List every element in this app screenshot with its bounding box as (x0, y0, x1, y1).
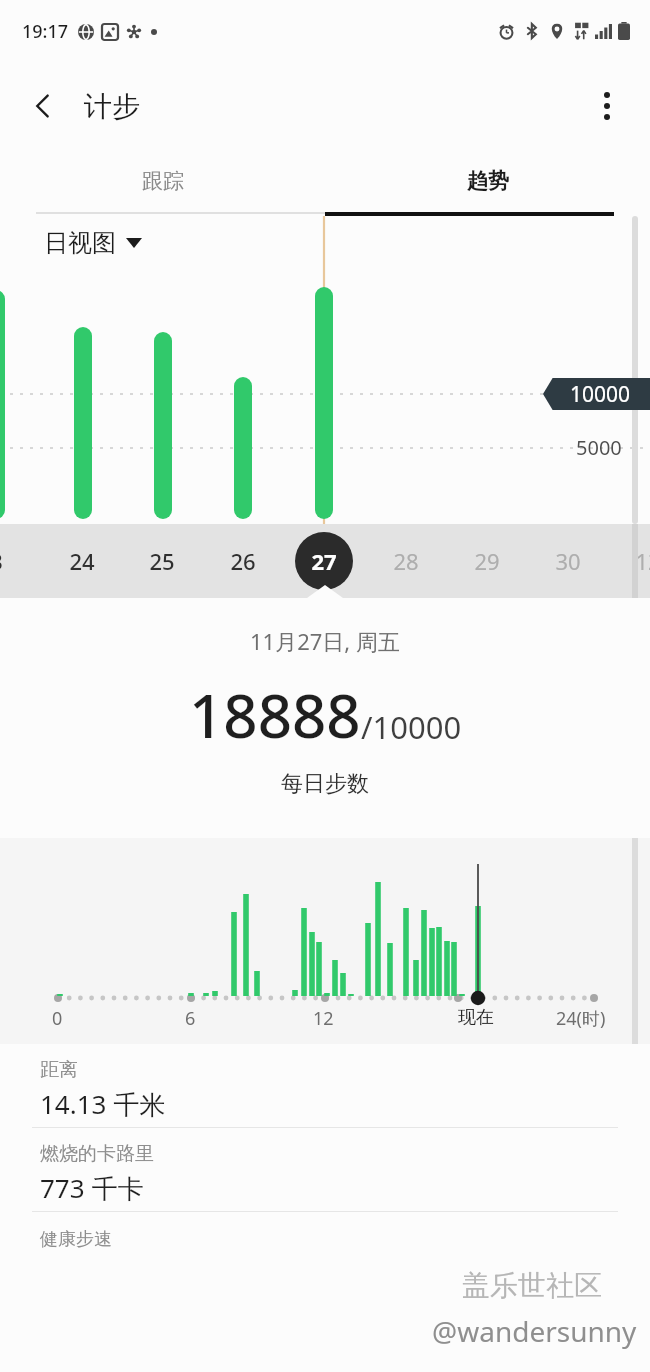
staticText: 26 (230, 546, 256, 576)
staticText: 趋势 (467, 168, 509, 194)
staticText: 盖乐世社区 (462, 1268, 602, 1303)
button[interactable]: 30 (539, 532, 597, 590)
button[interactable]: 趋势 (325, 150, 650, 212)
staticText: 28 (393, 546, 419, 576)
staticText: /10000 (361, 706, 462, 748)
staticText: 29 (474, 546, 500, 576)
button[interactable]: More options (578, 77, 636, 135)
button[interactable]: 日视图 (44, 228, 142, 258)
button[interactable]: 3 (0, 532, 25, 590)
staticText: 18888 (189, 674, 361, 756)
staticText: 3 (0, 546, 3, 576)
button[interactable]: Back (14, 77, 72, 135)
staticText: 现在 (458, 1006, 494, 1029)
button[interactable]: 燃烧的卡路里 (0, 1128, 650, 1212)
button[interactable]: 跟踪 (0, 150, 325, 212)
button[interactable]: 29 (458, 532, 516, 590)
staticText: 日视图 (44, 228, 116, 258)
staticText: 健康步速 (40, 1228, 112, 1251)
staticText: 距离 (40, 1058, 78, 1082)
staticText: 14.13 千米 (40, 1086, 166, 1122)
staticText: 5000 (576, 434, 622, 461)
button[interactable]: 27 (295, 532, 353, 590)
staticText: 计步 (84, 89, 140, 124)
staticText: 12 (313, 1006, 334, 1031)
staticText: 25 (149, 546, 175, 576)
staticText: 24 (69, 546, 95, 576)
button[interactable]: 25 (133, 532, 191, 590)
staticText: 10000 (570, 380, 631, 409)
staticText: @wandersunny (432, 1312, 637, 1350)
staticText: 0 (52, 1006, 63, 1031)
button[interactable]: 26 (214, 532, 272, 590)
staticText: 6 (185, 1006, 196, 1031)
button[interactable]: 距离 (0, 1044, 650, 1128)
staticText: 每日步数 (281, 770, 369, 798)
staticText: 12 (635, 546, 650, 576)
staticText: 燃烧的卡路里 (40, 1142, 154, 1166)
staticText: 27 (311, 546, 337, 576)
staticText: 30 (555, 546, 581, 576)
staticText: 19:17 (22, 19, 69, 44)
staticText: 11月27日, 周五 (250, 626, 400, 656)
button[interactable]: 12 (619, 532, 650, 590)
staticText: 773 千卡 (40, 1170, 144, 1206)
staticText: 24(时) (556, 1006, 606, 1031)
staticText: 跟踪 (142, 168, 184, 194)
button[interactable]: 健康步速 (0, 1212, 650, 1372)
button[interactable]: 28 (377, 532, 435, 590)
button[interactable]: 24 (53, 532, 111, 590)
